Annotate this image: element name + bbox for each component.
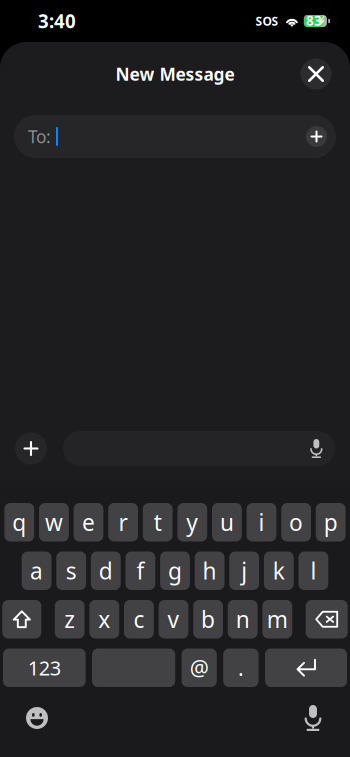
- button[interactable]: To:: [0, 115, 350, 158]
- staticText: m: [267, 604, 288, 634]
- button[interactable]: c: [124, 600, 154, 638]
- button[interactable]: Add attachment: [15, 432, 47, 464]
- button[interactable]: f: [125, 551, 155, 590]
- button[interactable]: Close: [297, 55, 335, 93]
- button[interactable]: g: [160, 551, 190, 590]
- button[interactable]: p: [316, 503, 346, 541]
- button[interactable]: r: [108, 503, 138, 541]
- staticText: z: [64, 604, 75, 634]
- staticText: w: [45, 507, 63, 537]
- staticText: SOS: [255, 13, 278, 29]
- button[interactable]: .: [223, 648, 259, 687]
- staticText: o: [289, 507, 303, 537]
- button[interactable]: m: [262, 600, 292, 638]
- staticText: 3:40: [38, 9, 76, 33]
- staticText: s: [66, 556, 77, 586]
- button[interactable]: Emoji: [10, 700, 64, 736]
- staticText: t: [154, 507, 162, 537]
- button[interactable]: t: [143, 503, 173, 541]
- staticText: f: [136, 556, 144, 586]
- button[interactable]: e: [74, 503, 103, 541]
- button[interactable]: Dictate: [286, 700, 340, 736]
- staticText: New Message: [115, 62, 234, 85]
- staticText: .: [238, 654, 244, 682]
- button[interactable]: j: [229, 551, 259, 590]
- button[interactable]: l: [298, 551, 328, 590]
- button[interactable]: n: [228, 600, 258, 638]
- button[interactable]: v: [159, 600, 188, 638]
- button[interactable]: x: [89, 600, 119, 638]
- button[interactable]: w: [39, 503, 69, 541]
- staticText: b: [201, 604, 215, 634]
- button[interactable]: Delete: [306, 600, 348, 638]
- button[interactable]: y: [177, 503, 207, 541]
- staticText: @: [190, 654, 209, 682]
- button[interactable]: b: [193, 600, 223, 638]
- staticText: v: [167, 604, 179, 634]
- staticText: x: [98, 604, 110, 634]
- button[interactable]: s: [56, 551, 86, 590]
- staticText: e: [82, 507, 95, 537]
- staticText: c: [133, 604, 144, 634]
- staticText: l: [310, 556, 316, 586]
- staticText: g: [168, 556, 182, 586]
- staticText: a: [30, 556, 43, 586]
- button[interactable]: @: [182, 648, 217, 687]
- button[interactable]: i: [247, 503, 276, 541]
- button[interactable]: a: [22, 551, 51, 590]
- button[interactable]: d: [91, 551, 121, 590]
- staticText: j: [241, 556, 247, 586]
- staticText: n: [236, 604, 250, 634]
- button[interactable]: u: [212, 503, 242, 541]
- button[interactable]: Return: [265, 648, 347, 687]
- staticText: d: [99, 556, 113, 586]
- staticText: 123: [28, 654, 61, 681]
- staticText: h: [203, 556, 217, 586]
- staticText: r: [119, 507, 128, 537]
- button[interactable]: h: [195, 551, 224, 590]
- button[interactable]: k: [264, 551, 294, 590]
- button[interactable]: 123: [3, 648, 86, 687]
- staticText: k: [273, 556, 285, 586]
- button[interactable]: z: [55, 600, 85, 638]
- staticText: u: [220, 507, 234, 537]
- staticText: p: [324, 507, 338, 537]
- staticText: q: [12, 507, 26, 537]
- staticText: i: [258, 507, 264, 537]
- staticText: 83: [306, 12, 322, 29]
- button[interactable]: Shift: [2, 600, 41, 638]
- button[interactable]: q: [4, 503, 34, 541]
- button[interactable]: [92, 648, 175, 687]
- button[interactable]: o: [281, 503, 311, 541]
- staticText: y: [186, 507, 198, 537]
- staticText: To:: [28, 125, 51, 148]
